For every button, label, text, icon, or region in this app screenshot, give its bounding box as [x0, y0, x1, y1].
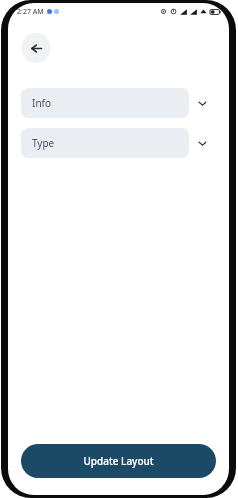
button[interactable]: Update Layout: [21, 444, 216, 478]
button[interactable]: Info: [21, 88, 216, 118]
staticText: Type: [32, 136, 55, 150]
staticText: Info: [32, 96, 52, 110]
staticText: Update Layout: [83, 454, 154, 468]
staticText: 2:27 AM: [17, 7, 44, 17]
button[interactable]: Type: [21, 128, 216, 158]
button[interactable]: Back: [21, 33, 51, 63]
